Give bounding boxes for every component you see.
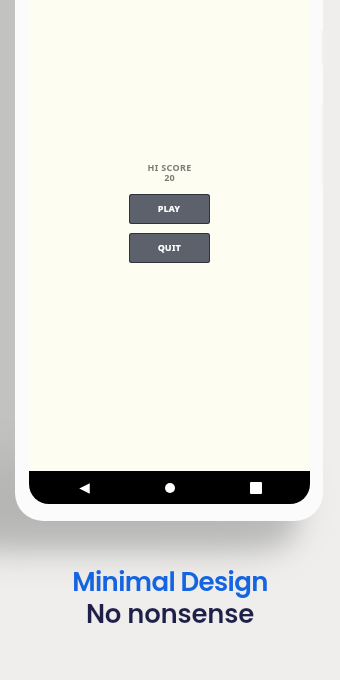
- staticText: No nonsense: [0, 596, 340, 632]
- button[interactable]: Recents: [244, 476, 268, 500]
- button[interactable]: Home: [158, 476, 182, 500]
- button[interactable]: QUIT: [130, 234, 209, 262]
- staticText: PLAY: [158, 203, 181, 215]
- staticText: QUIT: [158, 242, 181, 254]
- button[interactable]: PLAY: [130, 195, 209, 223]
- staticText: HI SCORE: [147, 161, 192, 173]
- staticText: Minimal Design: [0, 564, 340, 600]
- button[interactable]: Back: [72, 476, 96, 500]
- staticText: 20: [164, 171, 175, 183]
